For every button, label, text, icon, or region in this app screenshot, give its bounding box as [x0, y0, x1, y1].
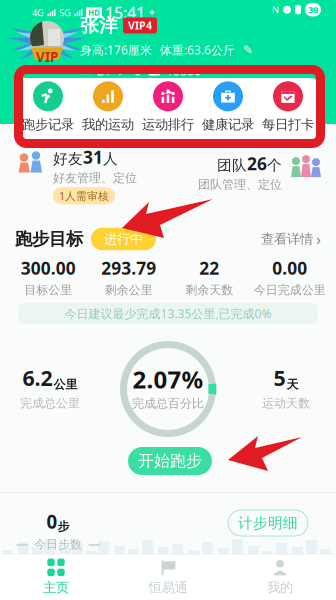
staticText: 15330	[166, 63, 201, 79]
staticText: ›	[316, 228, 321, 250]
button[interactable]: 计步明细	[228, 510, 308, 536]
button[interactable]: 运动排行	[138, 81, 198, 133]
button[interactable]: 查看详情	[261, 228, 321, 250]
staticText: VIP	[36, 48, 58, 66]
button[interactable]: 主页	[0, 558, 112, 596]
button[interactable]: 好友	[12, 150, 162, 200]
staticText: 个	[267, 156, 282, 174]
staticText: N	[272, 3, 279, 16]
button[interactable]: 团队	[174, 150, 324, 194]
staticText: 跑步目标	[15, 228, 83, 250]
staticText: 4G	[32, 6, 44, 19]
button[interactable]: 我的运动	[78, 81, 138, 133]
staticText: 开始跑步	[138, 451, 202, 471]
staticText: 健康记录	[202, 116, 254, 133]
staticText: 运动排行	[142, 116, 194, 133]
staticText: 完成总公里	[20, 396, 80, 410]
staticText: 主页	[43, 579, 69, 596]
staticText: 293.79	[101, 257, 156, 280]
staticText: 团队管理、定位	[198, 177, 282, 192]
staticText: 我的运动	[82, 116, 134, 133]
staticText: 每日打卡	[262, 116, 314, 133]
staticText: 2.07%	[132, 363, 203, 395]
staticText: 身高:176厘米	[80, 42, 152, 58]
staticText: 步	[57, 519, 69, 534]
button[interactable]: 每日打卡	[258, 81, 318, 133]
staticText: 5G	[59, 6, 71, 19]
staticText: 今日完成公里	[254, 283, 326, 297]
staticText: 0	[46, 509, 57, 534]
staticText: 团队	[217, 156, 247, 174]
staticText: — 今日步数 —	[16, 536, 100, 552]
staticText: 好友	[53, 150, 83, 168]
staticText: 6.2	[22, 363, 52, 392]
staticText: HD	[88, 7, 100, 18]
staticText: 跑步记录	[22, 116, 74, 133]
staticText: 天	[286, 377, 298, 392]
staticText: 今日建议最少完成13.35公里,已完成0%	[64, 305, 271, 321]
staticText: 目标公里	[24, 283, 72, 297]
staticText: 我的	[267, 579, 293, 596]
staticText: 5	[273, 363, 285, 392]
button[interactable]: 健康记录	[198, 81, 258, 133]
staticText: 计步明细	[238, 514, 298, 532]
staticText: 剩余天数	[185, 283, 233, 297]
staticText: 体重:63.6公斤	[160, 42, 235, 58]
staticText: 人	[103, 150, 118, 168]
staticText: VIP4	[128, 18, 152, 33]
staticText: 完成总百分比	[132, 396, 204, 411]
staticText: 0	[134, 63, 141, 79]
staticText: 300.00	[21, 257, 76, 280]
staticText: ✎	[243, 43, 253, 57]
button[interactable]: 我的	[224, 558, 336, 596]
staticText: 15:41	[105, 2, 145, 23]
staticText: 公里	[53, 377, 77, 392]
staticText: 好友管理、定位	[53, 171, 137, 185]
staticText: 39	[308, 3, 318, 16]
staticText: 进行中	[104, 231, 143, 247]
staticText: 查看详情	[261, 231, 313, 247]
staticText: 21	[97, 63, 111, 79]
staticText: 恒易通	[148, 579, 187, 596]
staticText: ✦	[148, 7, 156, 18]
staticText: 31	[83, 145, 103, 168]
staticText: 张洋	[80, 14, 118, 37]
staticText: ✉	[80, 63, 91, 78]
staticText: 0.00	[272, 257, 307, 280]
staticText: 1人需审核	[59, 189, 109, 203]
staticText: 剩余公里	[105, 283, 153, 297]
button[interactable]: 跑步记录	[18, 81, 78, 133]
staticText: ☁	[147, 63, 160, 78]
staticText: 22	[199, 257, 219, 280]
staticText: 26	[247, 152, 267, 175]
staticText: ➤	[117, 63, 128, 78]
button[interactable]: 恒易通	[112, 558, 224, 596]
staticText: 运动天数	[262, 396, 310, 410]
button[interactable]: 开始跑步	[128, 447, 212, 475]
